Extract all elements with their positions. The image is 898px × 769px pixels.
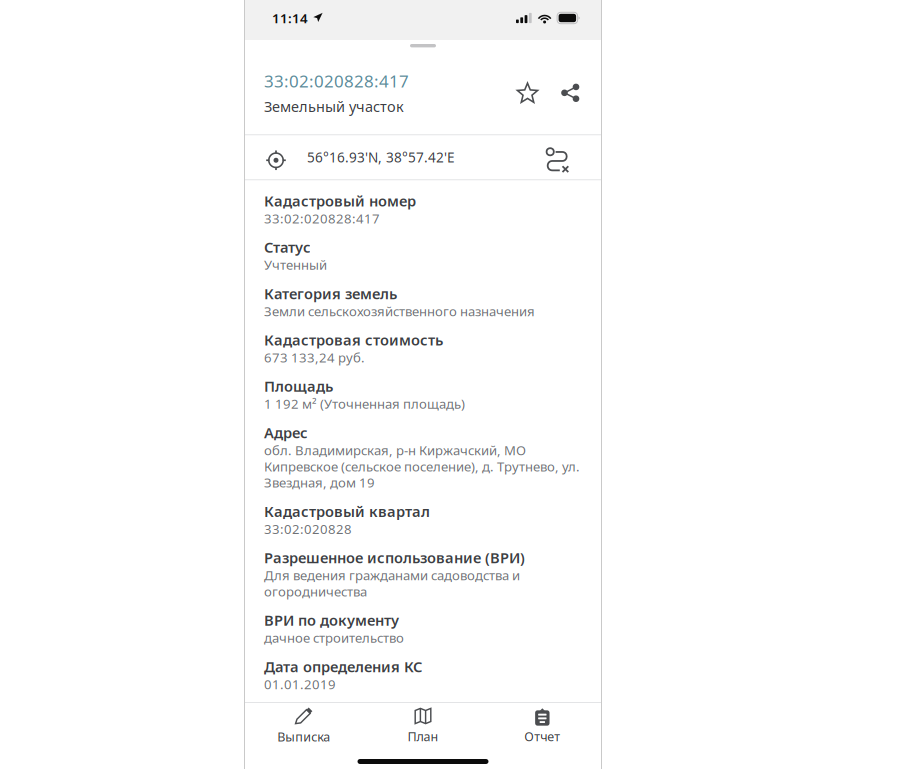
button[interactable]: Выписка xyxy=(244,707,363,745)
staticText: План xyxy=(407,728,438,745)
staticText: Кадастровая стоимость xyxy=(264,330,443,350)
staticText: 33:02:020828 xyxy=(264,520,352,538)
staticText: Для ведения гражданами садоводства и xyxy=(264,566,520,584)
staticText: Звездная, дом 19 xyxy=(264,474,375,491)
staticText: 673 133,24 руб. xyxy=(264,348,365,366)
staticText: огородничества xyxy=(264,582,367,600)
staticText: Статус xyxy=(264,237,311,257)
staticText: 33:02:020828:417 xyxy=(264,69,409,92)
staticText: 1 192 м² (Уточненная площадь) xyxy=(264,395,465,413)
staticText: Категория земель xyxy=(264,284,397,303)
staticText: Выписка xyxy=(277,728,330,745)
button[interactable]: 33:02:020828:417 xyxy=(264,69,409,92)
staticText: Адрес xyxy=(264,423,308,442)
button[interactable]: Отчет xyxy=(483,707,602,745)
staticText: Кипревское (сельское поселение), д. Трут… xyxy=(264,457,580,475)
staticText: Кадастровый квартал xyxy=(264,501,430,521)
staticText: Учтенный xyxy=(264,256,327,274)
button[interactable]: 56°16.93'N, 38°57.42'E xyxy=(244,135,602,179)
staticText: обл. Владимирская, р-н Киржачский, МО xyxy=(264,441,526,459)
staticText: 56°16.93'N, 38°57.42'E xyxy=(307,148,455,166)
button[interactable]: Добавить в избранное xyxy=(516,81,539,104)
staticText: Кадастровый номер xyxy=(264,191,416,210)
staticText: Разрешенное использование (ВРИ) xyxy=(264,548,525,567)
staticText: ВРИ по документу xyxy=(264,610,399,630)
staticText: Земельный участок xyxy=(264,96,404,116)
button[interactable]: План xyxy=(363,707,483,745)
staticText: Отчет xyxy=(524,728,560,745)
staticText: 33:02:020828:417 xyxy=(264,209,380,227)
staticText: Дата определения КС xyxy=(264,657,422,676)
staticText: Площадь xyxy=(264,376,333,396)
staticText: 01.01.2019 xyxy=(264,675,336,693)
button[interactable]: Поделиться xyxy=(539,83,580,102)
staticText: дачное строительство xyxy=(264,629,404,647)
staticText: Земли сельскохозяйственного назначения xyxy=(264,302,535,320)
staticText: 11:14 xyxy=(272,9,308,27)
